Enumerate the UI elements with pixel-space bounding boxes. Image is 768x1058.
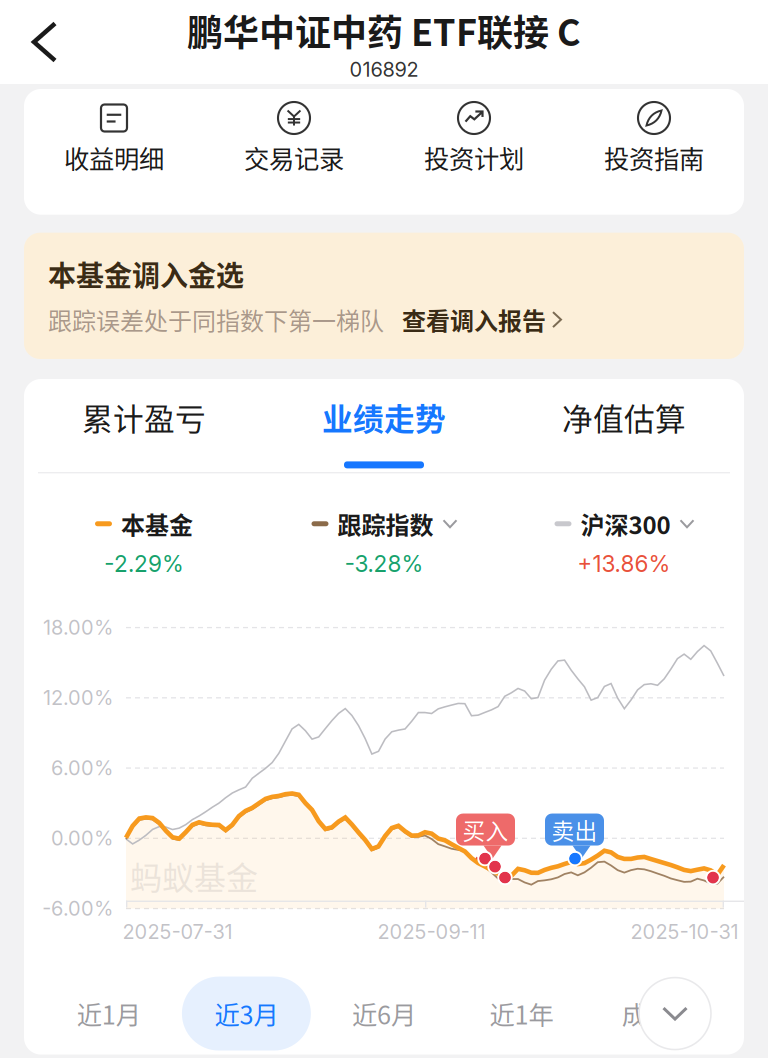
staticText: 2025-09-11	[377, 920, 485, 944]
staticText: -6.00%	[42, 896, 113, 921]
staticText: 成立来	[622, 995, 697, 1032]
staticText: 近3月	[214, 995, 278, 1032]
staticText: 近6月	[352, 995, 416, 1032]
staticText: 收益明细	[64, 139, 164, 176]
staticText: 2025-10-31	[630, 920, 738, 944]
button[interactable]: 近1年	[457, 977, 586, 1051]
staticText: 卖出	[551, 813, 597, 846]
staticText: 查看调入报告	[402, 302, 546, 337]
button[interactable]: 投资计划	[384, 102, 564, 176]
button[interactable]: 成立来	[595, 977, 724, 1051]
staticText: 近1年	[490, 995, 554, 1032]
staticText: 跟踪误差处于同指数下第一梯队	[48, 302, 384, 337]
button[interactable]: 近3月	[182, 977, 311, 1051]
staticText: 蚂蚁基金	[130, 853, 258, 899]
staticText: 投资计划	[424, 139, 524, 176]
staticText: 016892	[349, 57, 418, 82]
staticText: 沪深300	[580, 506, 670, 541]
staticText: 本基金调入金选	[48, 254, 244, 294]
staticText: -3.28%	[344, 550, 423, 577]
staticText: 净值估算	[562, 395, 686, 439]
staticText: 累计盈亏	[82, 395, 206, 439]
staticText: -2.29%	[104, 550, 184, 577]
staticText: 本基金	[121, 506, 193, 541]
staticText: 鹏华中证中药 ETF联接 C	[187, 4, 581, 56]
button[interactable]: 收益明细	[24, 102, 204, 176]
staticText: 18.00%	[43, 615, 113, 640]
button[interactable]: 累计盈亏	[24, 395, 264, 473]
staticText: 6.00%	[51, 756, 113, 780]
button[interactable]: 近1月	[44, 977, 173, 1051]
staticText: 近1月	[77, 995, 141, 1032]
staticText: 买入	[462, 813, 508, 846]
button[interactable]: 本基金调入金选	[0, 215, 768, 359]
staticText: 0.00%	[51, 826, 113, 850]
button[interactable]: 净值估算	[504, 395, 744, 473]
button[interactable]: 投资指南	[564, 102, 744, 176]
staticText: 12.00%	[43, 686, 113, 710]
button[interactable]: 展开	[639, 978, 711, 1050]
button[interactable]: 返回	[0, 0, 79, 84]
staticText: 投资指南	[604, 139, 704, 176]
staticText: 跟踪指数	[337, 506, 433, 541]
button[interactable]: 业绩走势	[264, 395, 504, 473]
staticText: 交易记录	[244, 139, 344, 176]
button[interactable]: 近6月	[319, 977, 448, 1051]
button[interactable]: 交易记录	[204, 102, 384, 176]
staticText: 2025-07-31	[122, 920, 232, 944]
staticText: +13.86%	[577, 550, 670, 577]
staticText: 业绩走势	[322, 395, 446, 439]
